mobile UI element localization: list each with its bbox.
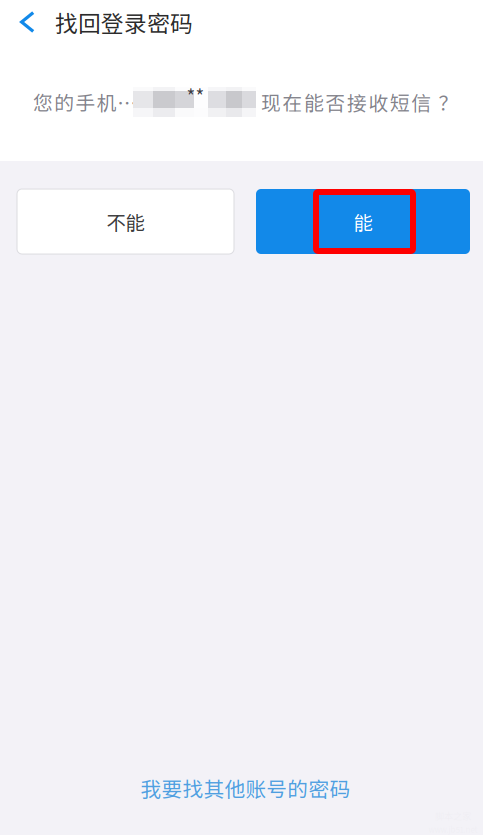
button[interactable]: 返回 <box>0 0 55 44</box>
button[interactable]: 我要找其他账号的密码 <box>121 773 361 803</box>
staticText: 您的手机号 <box>33 88 138 116</box>
button[interactable]: 能 <box>256 189 470 254</box>
staticText: 现在能否接收短信 ？ <box>261 88 458 116</box>
staticText: 不能 <box>106 207 144 235</box>
staticText: 能 <box>353 207 372 235</box>
staticText: ** <box>186 82 204 109</box>
staticText: 找回登录密码 <box>55 6 193 38</box>
button[interactable]: 不能 <box>17 189 234 254</box>
staticText: 我要找其他账号的密码 <box>140 773 350 803</box>
